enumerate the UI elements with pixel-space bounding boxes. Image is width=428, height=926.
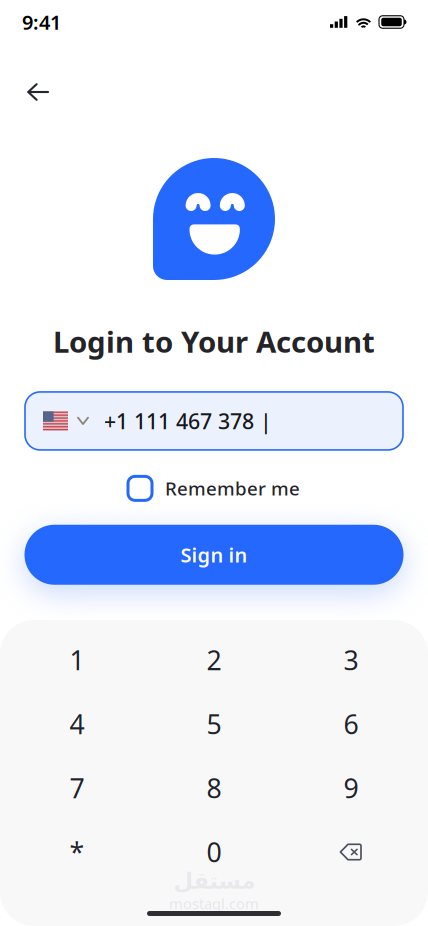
- staticText: 4: [69, 706, 84, 742]
- staticText: *: [69, 834, 84, 870]
- staticText: mostaql.com: [169, 894, 259, 913]
- staticText: 1: [69, 642, 84, 678]
- button[interactable]: 8: [145, 756, 282, 820]
- button[interactable]: Delete: [282, 820, 419, 884]
- button[interactable]: 2: [145, 628, 282, 692]
- button[interactable]: *: [8, 820, 145, 884]
- staticText: 0: [206, 834, 221, 870]
- staticText: Login to Your Account: [53, 322, 375, 361]
- button[interactable]: 6: [282, 692, 419, 756]
- staticText: Sign in: [180, 541, 247, 568]
- button[interactable]: Back: [16, 70, 60, 114]
- staticText: 9: [343, 770, 358, 806]
- button[interactable]: 3: [282, 628, 419, 692]
- button[interactable]: Remember me: [128, 476, 300, 501]
- button[interactable]: 0: [145, 820, 282, 884]
- button[interactable]: 7: [8, 756, 145, 820]
- staticText: +1 111 467 378 |: [104, 407, 272, 435]
- button[interactable]: 9: [282, 756, 419, 820]
- staticText: مستقل: [173, 868, 255, 894]
- button[interactable]: 5: [145, 692, 282, 756]
- button[interactable]: 4: [8, 692, 145, 756]
- staticText: 5: [206, 706, 221, 742]
- staticText: 8: [206, 770, 221, 806]
- staticText: 6: [343, 706, 358, 742]
- staticText: 2: [206, 642, 221, 678]
- staticText: 7: [69, 770, 84, 806]
- staticText: 9:41: [22, 9, 61, 35]
- staticText: Remember me: [165, 476, 300, 501]
- staticText: 3: [343, 642, 358, 678]
- button[interactable]: Sign in: [24, 525, 403, 585]
- button[interactable]: 1: [8, 628, 145, 692]
